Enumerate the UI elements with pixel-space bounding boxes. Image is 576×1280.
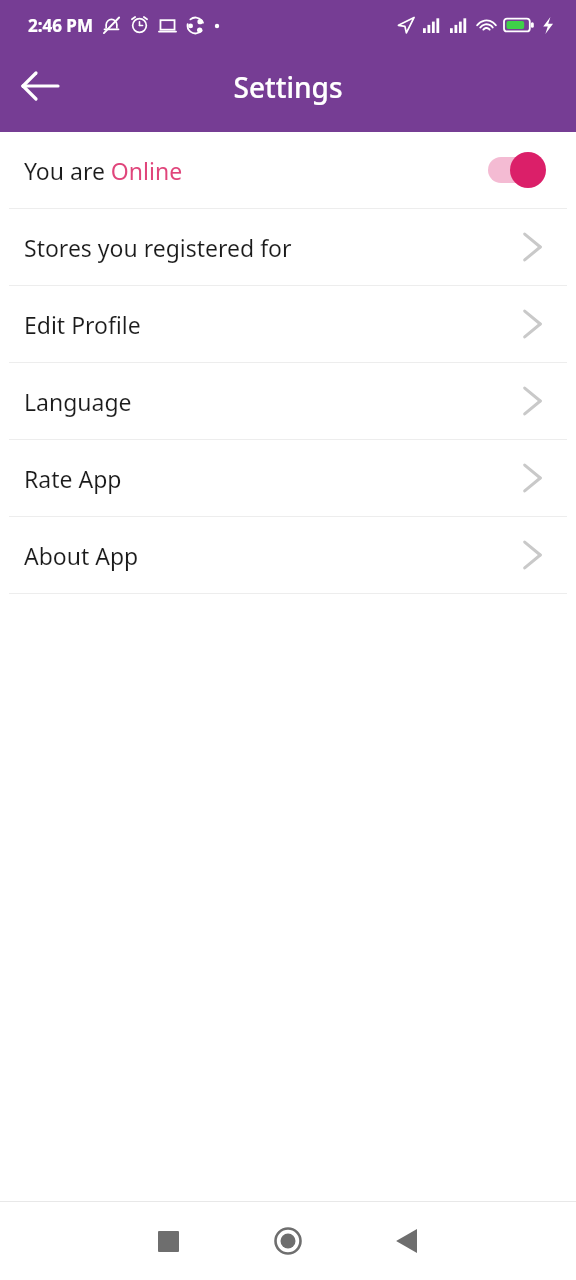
staticText: Language (24, 386, 520, 417)
staticText: Edit Profile (24, 309, 520, 340)
staticText: Rate App (24, 463, 520, 494)
button[interactable]: Edit Profile (0, 286, 576, 362)
button[interactable]: Rate App (0, 440, 576, 516)
button[interactable]: You are Online (0, 132, 576, 208)
staticText: About App (24, 540, 520, 571)
staticText: 2:46 PM (28, 14, 93, 37)
staticText: You are Online (24, 155, 486, 186)
button[interactable]: Stores you registered for (0, 209, 576, 285)
button[interactable]: Back (376, 1211, 436, 1271)
button[interactable]: Online toggle (486, 150, 548, 190)
staticText: Stores you registered for (24, 232, 520, 263)
button[interactable]: Language (0, 363, 576, 439)
button[interactable]: Home (258, 1211, 318, 1271)
button[interactable]: Back (8, 58, 72, 114)
staticText: Settings (233, 68, 343, 106)
button[interactable]: Recent apps (138, 1211, 198, 1271)
button[interactable]: About App (0, 517, 576, 593)
